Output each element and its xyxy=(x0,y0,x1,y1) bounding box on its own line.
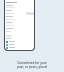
button[interactable]: Checkbox xyxy=(6,41,8,43)
staticText: Customized for your xyxy=(17,61,47,65)
staticText: post, or posts, plural xyxy=(17,65,47,69)
button[interactable]: Checkbox xyxy=(5,0,34,50)
